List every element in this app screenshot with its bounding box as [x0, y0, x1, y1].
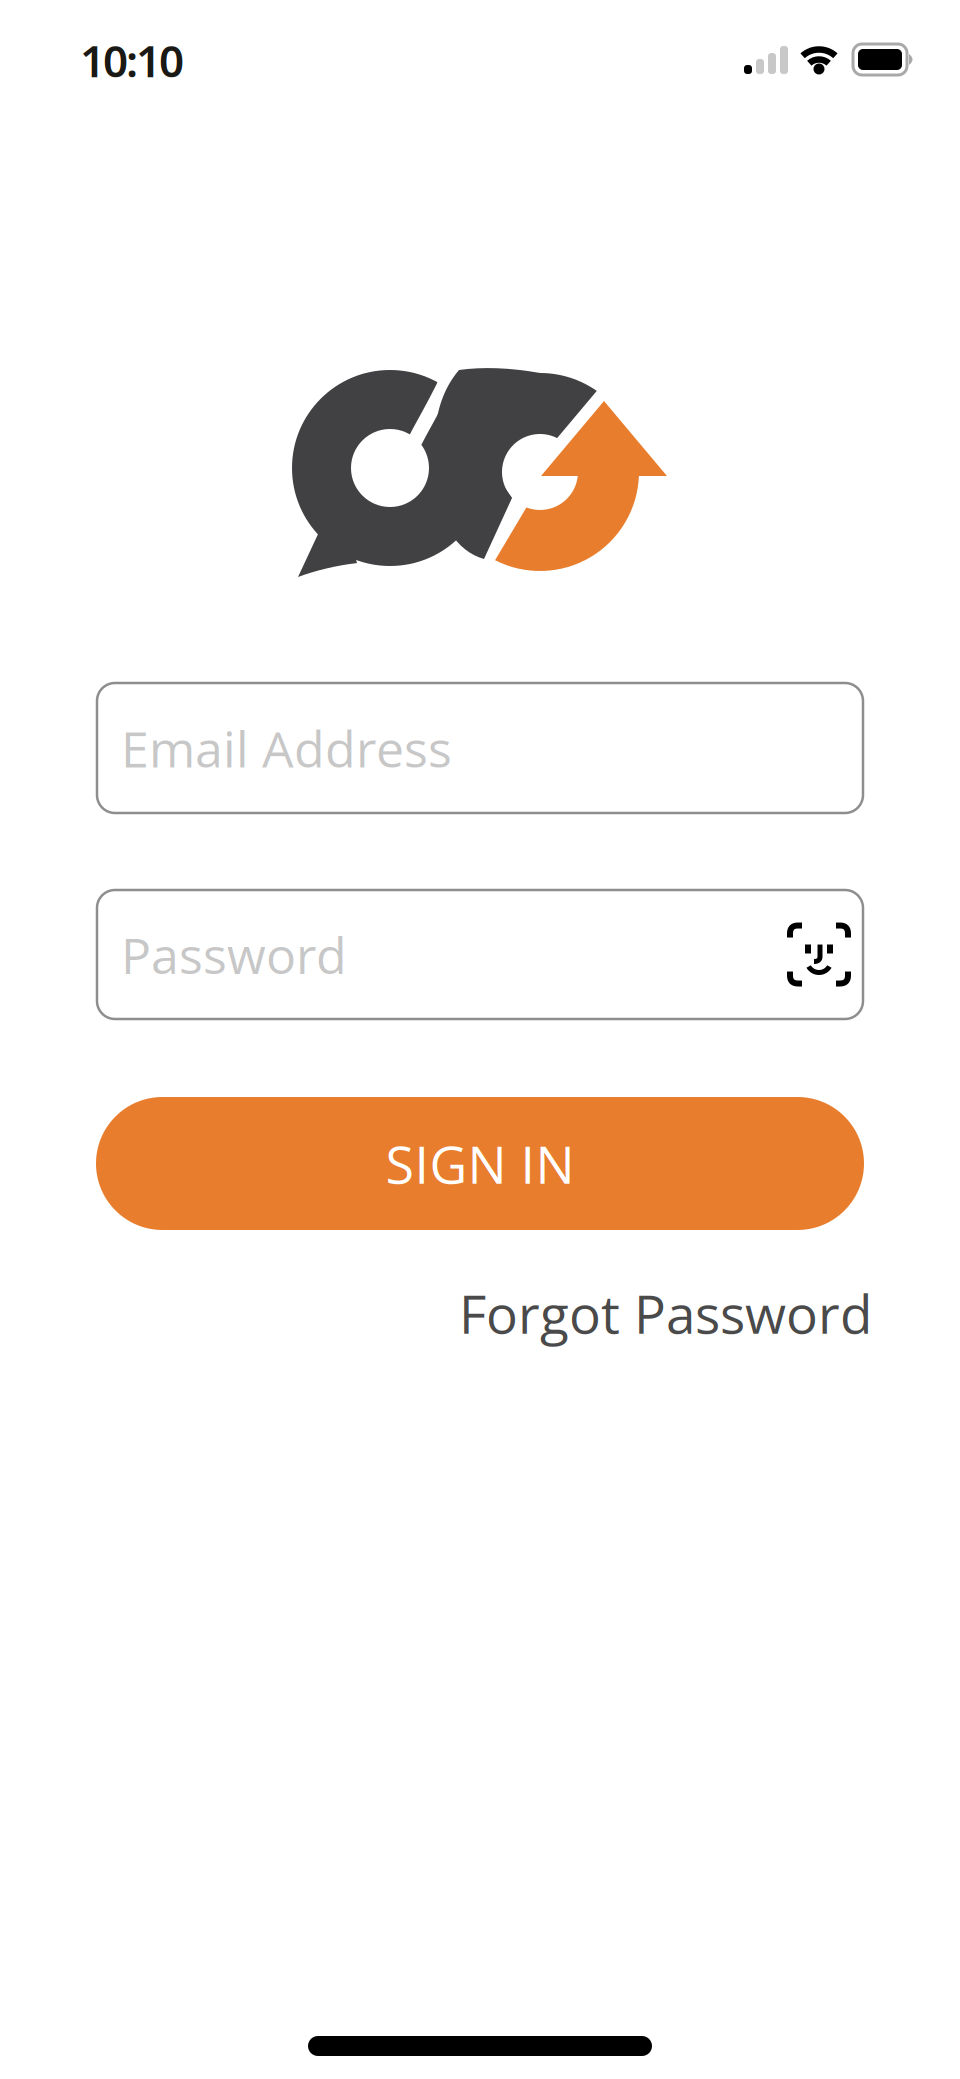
button[interactable]: Sign in with Face ID [787, 922, 851, 986]
staticText: Password [121, 920, 347, 989]
staticText: 10:10 [80, 31, 184, 89]
staticText: Email Address [121, 714, 452, 782]
staticText: Forgot Password [459, 1277, 872, 1349]
button[interactable]: Forgot Password [459, 1277, 872, 1349]
staticText: SIGN IN [385, 1128, 574, 1199]
button[interactable]: Email Address [97, 683, 863, 813]
button[interactable]: Password [97, 890, 863, 1019]
button[interactable]: SIGN IN [96, 1097, 864, 1230]
